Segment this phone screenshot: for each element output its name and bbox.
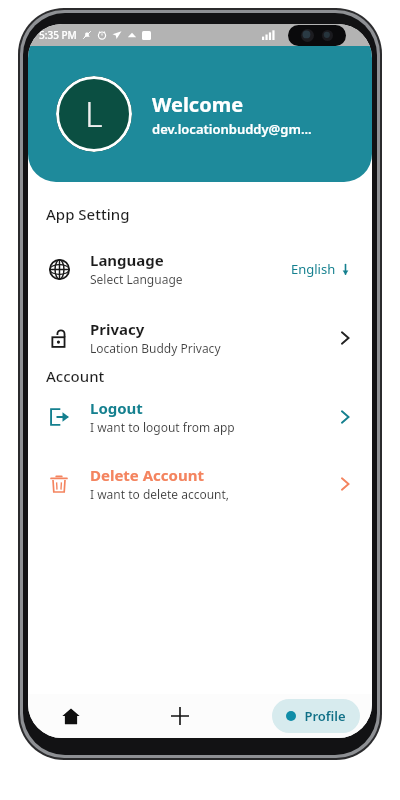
staticText: English bbox=[291, 260, 336, 278]
staticText: Account bbox=[46, 366, 105, 386]
staticText: Delete Account bbox=[90, 465, 204, 485]
button[interactable]: Profile bbox=[272, 699, 360, 733]
staticText: Profile bbox=[304, 707, 346, 725]
button[interactable]: Privacy bbox=[28, 315, 372, 360]
staticText: Privacy bbox=[90, 319, 145, 339]
staticText: Location Buddy Privacy bbox=[90, 340, 221, 356]
staticText: I want to delete account, bbox=[90, 486, 230, 502]
other: Open bbox=[334, 327, 356, 349]
button[interactable]: Delete Account bbox=[28, 461, 372, 506]
staticText: L bbox=[85, 91, 103, 137]
staticText: App Setting bbox=[46, 204, 130, 224]
staticText: I want to logout from app bbox=[90, 419, 235, 435]
button[interactable]: English bbox=[287, 256, 356, 282]
other: Open bbox=[334, 406, 356, 428]
staticText: dev.locationbuddy@gm... bbox=[152, 120, 312, 138]
staticText: Logout bbox=[90, 398, 143, 418]
button[interactable]: Logout bbox=[28, 394, 372, 439]
button[interactable]: Home bbox=[54, 699, 88, 733]
staticText: Language bbox=[90, 250, 164, 270]
staticText: 5:35 PM bbox=[39, 28, 77, 42]
staticText: Select Language bbox=[90, 271, 183, 287]
other: Open bbox=[334, 473, 356, 495]
button[interactable]: Add bbox=[163, 699, 197, 733]
button[interactable]: Language bbox=[28, 246, 372, 291]
staticText: Welcome bbox=[152, 91, 244, 118]
